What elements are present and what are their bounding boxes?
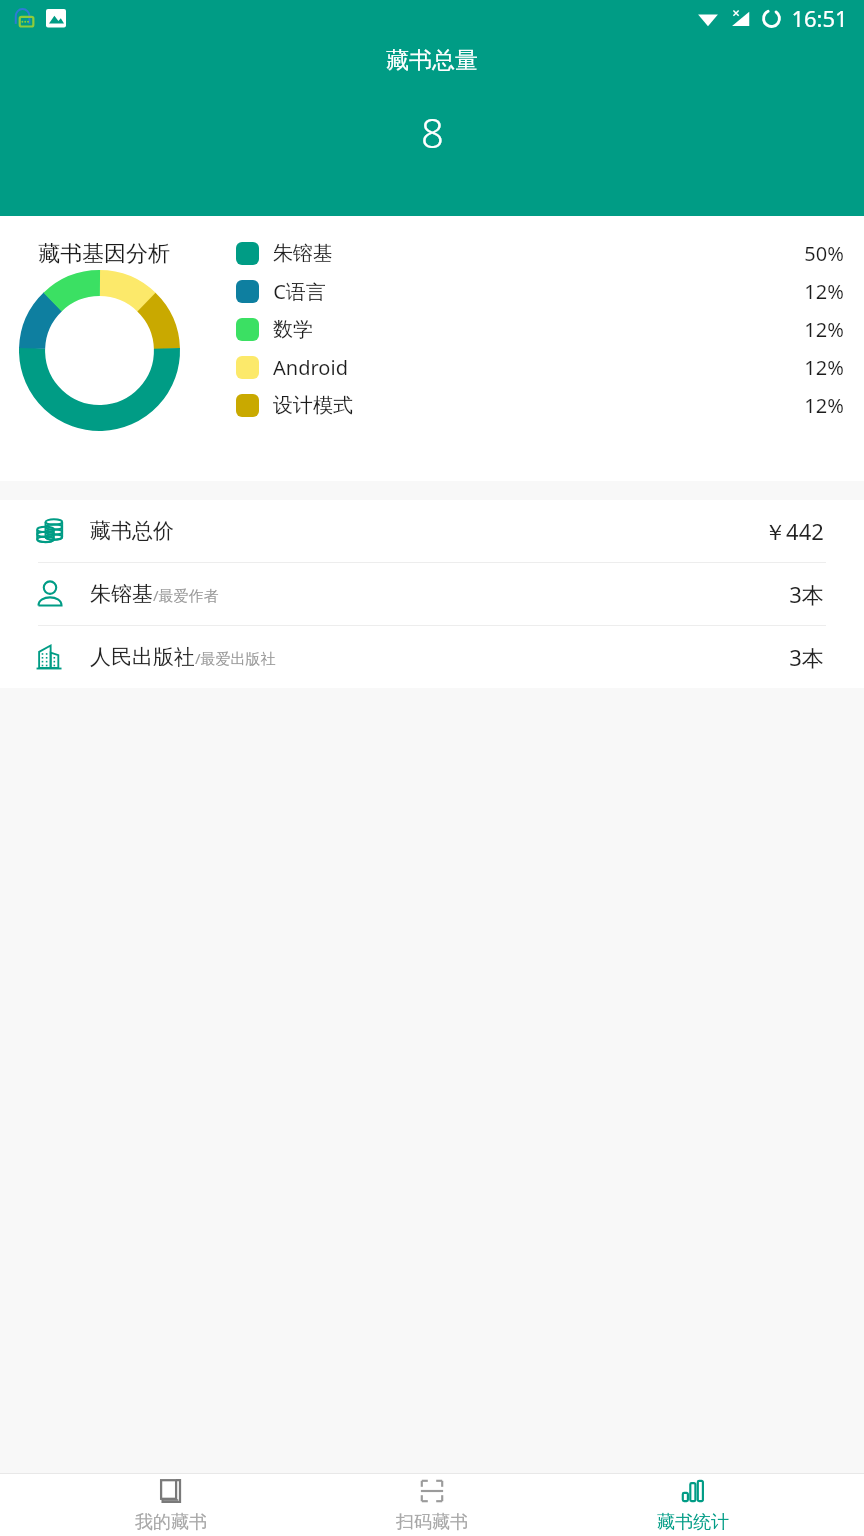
- staticText: 3本: [789, 579, 824, 609]
- staticText: 朱镕基/最爱作者: [90, 581, 219, 607]
- staticText: 朱镕基: [273, 241, 333, 266]
- staticText: 50%: [804, 240, 844, 267]
- staticText: 12%: [804, 354, 844, 381]
- staticText: 12%: [804, 278, 844, 305]
- staticText: 藏书统计: [657, 1511, 729, 1534]
- staticText: Android: [273, 354, 348, 381]
- button[interactable]: Total value: [0, 500, 864, 562]
- button[interactable]: 扫码藏书: [342, 1473, 522, 1536]
- other: Favourite publisher: [34, 641, 66, 673]
- other: Favourite author: [34, 578, 66, 610]
- staticText: 3本: [789, 642, 824, 672]
- button[interactable]: 我的藏书: [81, 1473, 261, 1536]
- button[interactable]: 藏书统计: [603, 1473, 783, 1536]
- staticText: 16:51: [791, 3, 848, 33]
- staticText: 扫码藏书: [396, 1511, 468, 1534]
- staticText: ￥442: [764, 516, 824, 546]
- staticText: 数学: [273, 317, 313, 342]
- staticText: 12%: [804, 316, 844, 343]
- staticText: C语言: [273, 278, 326, 305]
- staticText: 8: [421, 105, 444, 159]
- button[interactable]: 设计模式: [236, 386, 852, 424]
- button[interactable]: C语言: [236, 272, 852, 310]
- staticText: 12%: [804, 392, 844, 419]
- other: Total value: [34, 515, 66, 547]
- staticText: 设计模式: [273, 393, 353, 418]
- button[interactable]: Android: [236, 348, 852, 386]
- button[interactable]: 数学: [236, 310, 852, 348]
- button[interactable]: Favourite publisher: [0, 626, 864, 688]
- staticText: 藏书总量: [386, 46, 478, 75]
- button[interactable]: Favourite author: [0, 563, 864, 625]
- staticText: 藏书总价: [90, 518, 174, 544]
- staticText: 我的藏书: [135, 1511, 207, 1534]
- button[interactable]: 朱镕基: [236, 234, 852, 272]
- staticText: 藏书基因分析: [38, 240, 170, 268]
- staticText: 人民出版社/最爱出版社: [90, 644, 276, 670]
